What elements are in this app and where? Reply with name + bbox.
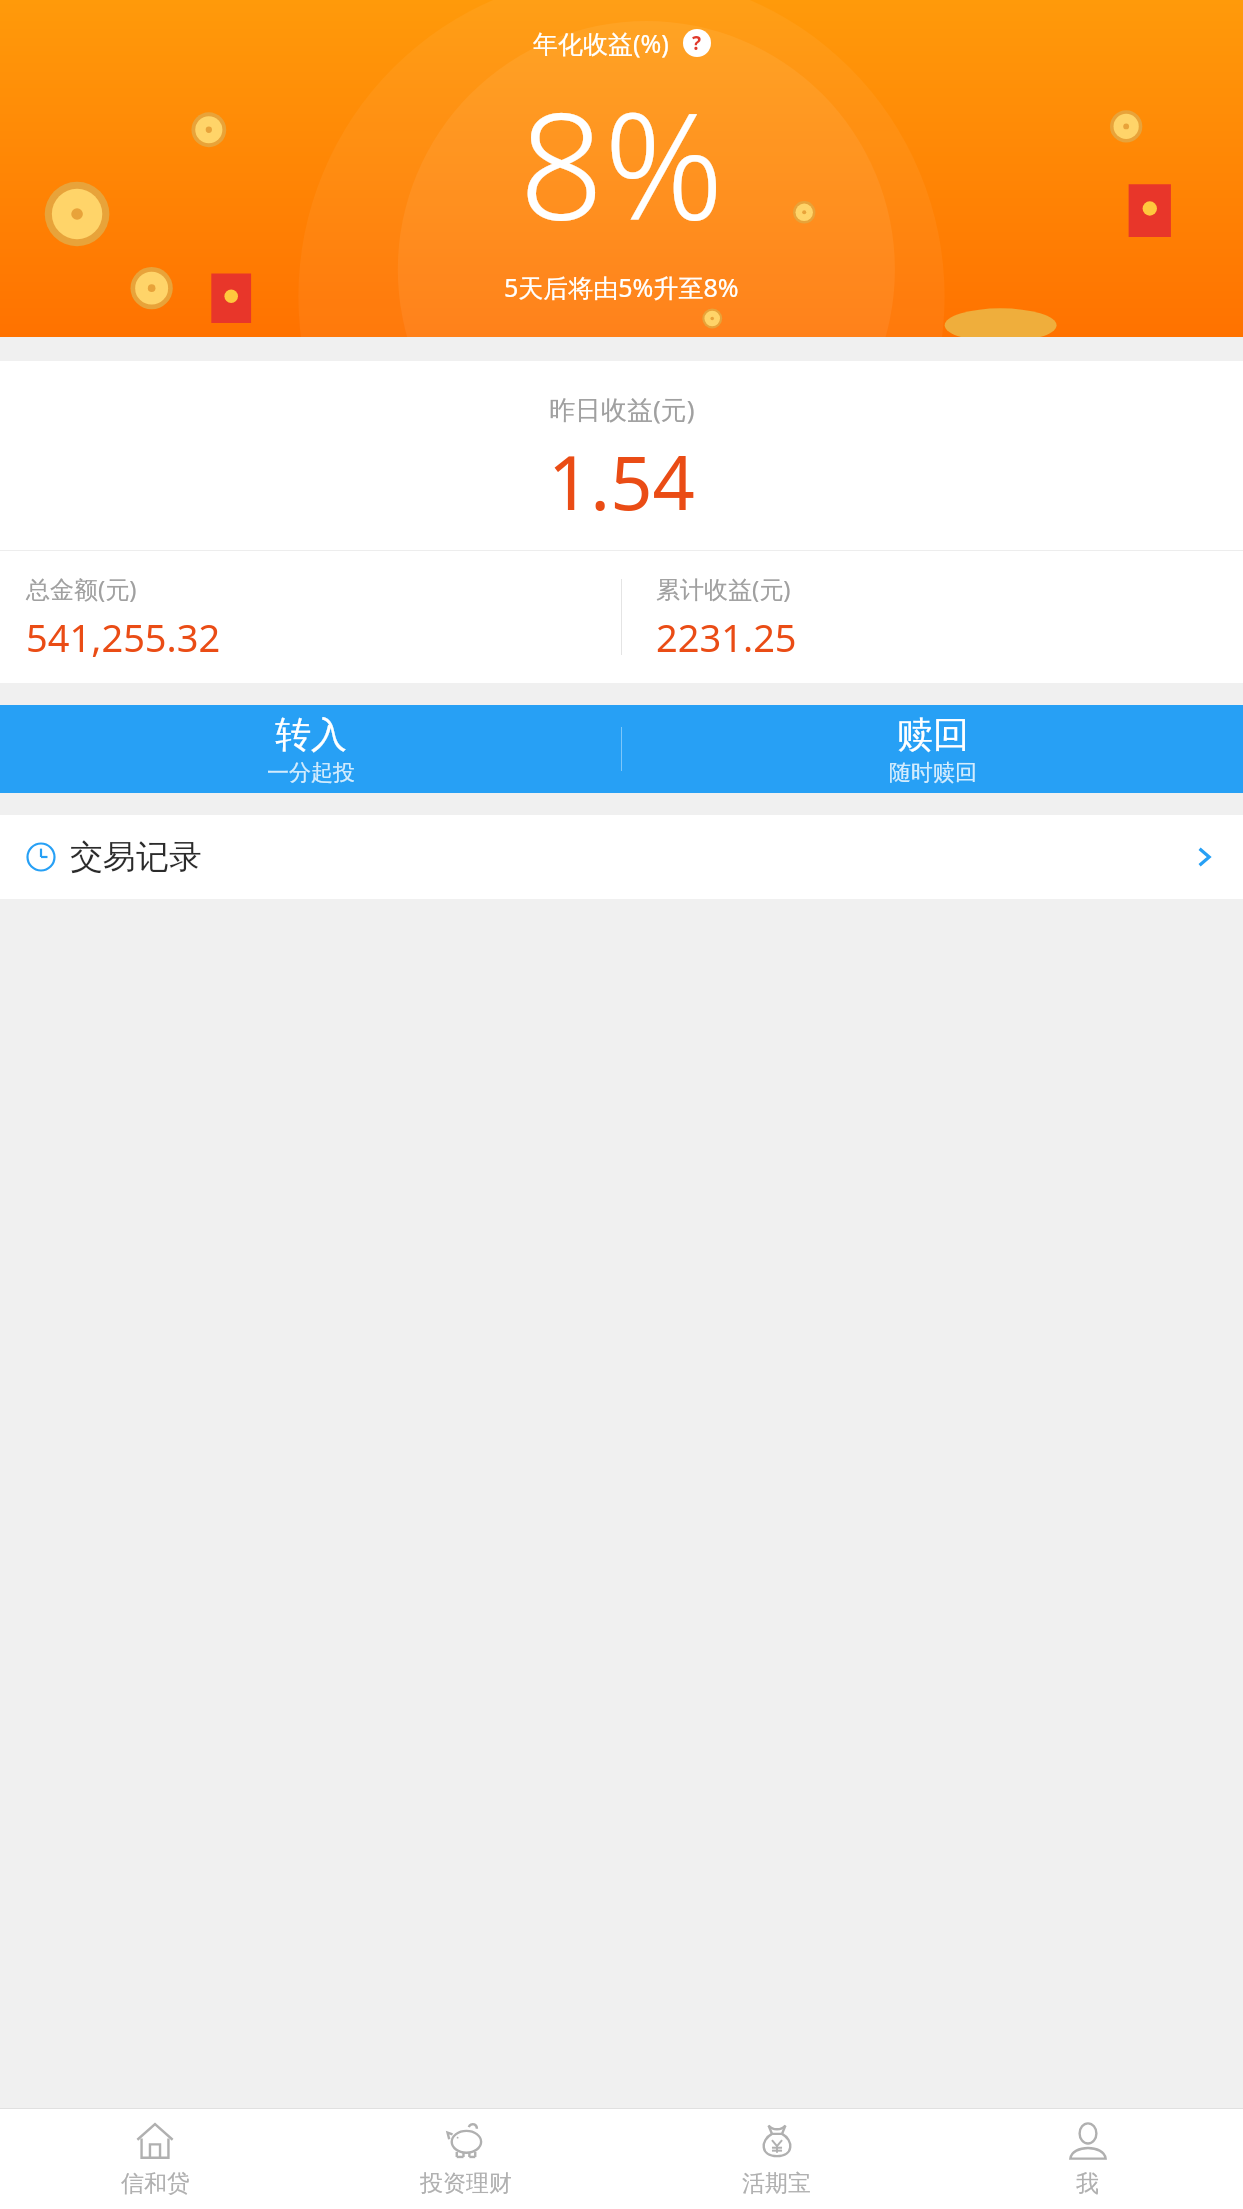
staticText: 5天后将由5%升至8%: [504, 270, 739, 304]
staticText: 赎回: [897, 712, 969, 757]
staticText: 昨日收益(元): [549, 391, 695, 427]
button[interactable]: 我: [932, 2109, 1243, 2209]
staticText: 我: [1076, 2169, 1099, 2198]
button[interactable]: Help: [683, 29, 711, 57]
staticText: ?: [692, 30, 702, 56]
staticText: 交易记录: [70, 836, 202, 878]
staticText: 活期宝: [742, 2169, 811, 2198]
button[interactable]: 赎回: [622, 705, 1243, 793]
staticText: 541,255.32: [26, 611, 221, 663]
button[interactable]: 活期宝: [621, 2109, 932, 2209]
staticText: 1.54: [548, 431, 695, 532]
staticText: 累计收益(元): [656, 572, 791, 605]
staticText: 8%: [519, 62, 724, 264]
staticText: 转入: [275, 712, 347, 757]
button[interactable]: 交易记录: [0, 815, 1243, 899]
staticText: 一分起投: [267, 759, 355, 787]
staticText: 投资理财: [420, 2169, 512, 2198]
button[interactable]: 投资理财: [310, 2109, 621, 2209]
staticText: 2231.25: [656, 611, 797, 663]
staticText: 信和贷: [121, 2169, 190, 2198]
staticText: 随时赎回: [889, 759, 977, 787]
button[interactable]: 信和贷: [0, 2109, 310, 2209]
staticText: 总金额(元): [26, 572, 137, 605]
staticText: 年化收益(%): [533, 26, 669, 60]
button[interactable]: 转入: [0, 705, 621, 793]
